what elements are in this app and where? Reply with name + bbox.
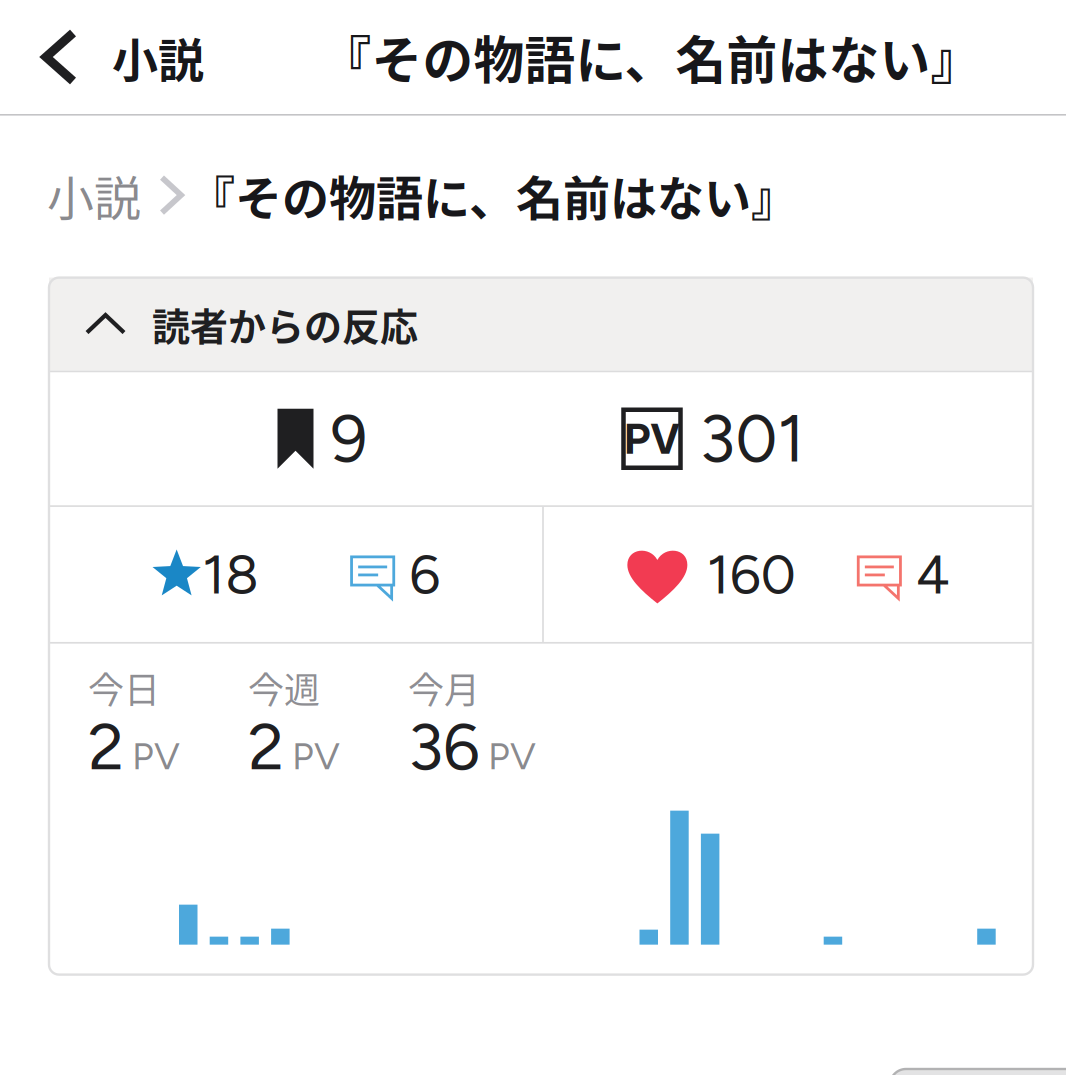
staticText: 2 — [88, 708, 124, 785]
staticText: 今週 — [248, 662, 320, 714]
staticText: 9 — [330, 400, 367, 478]
staticText: PV — [488, 734, 536, 778]
button[interactable]: 小説 — [0, 0, 236, 114]
staticText: 160 — [707, 542, 796, 607]
staticText: 今月 — [408, 662, 480, 714]
staticText: 2 — [248, 708, 284, 785]
staticText: 読者からの反応 — [152, 296, 418, 351]
staticText: 『その物語に、名前はない』 — [188, 161, 798, 229]
staticText: 18 — [202, 542, 259, 607]
staticText: 小説 — [112, 24, 204, 90]
button[interactable]: 読者からの反応 — [49, 278, 1033, 371]
staticText: PV — [132, 734, 180, 778]
button[interactable]: 小説 — [47, 161, 141, 229]
staticText: 36 — [408, 708, 480, 785]
staticText: 301 — [699, 400, 804, 478]
staticText: PV — [292, 734, 340, 778]
staticText: 4 — [916, 542, 950, 607]
button[interactable]: More — [836, 1069, 1066, 1075]
staticText: 小説 — [47, 161, 141, 229]
staticText: PV — [624, 414, 679, 464]
staticText: 6 — [409, 542, 440, 607]
staticText: 今日 — [88, 662, 160, 714]
staticText: 『その物語に、名前はない』 — [320, 20, 981, 94]
